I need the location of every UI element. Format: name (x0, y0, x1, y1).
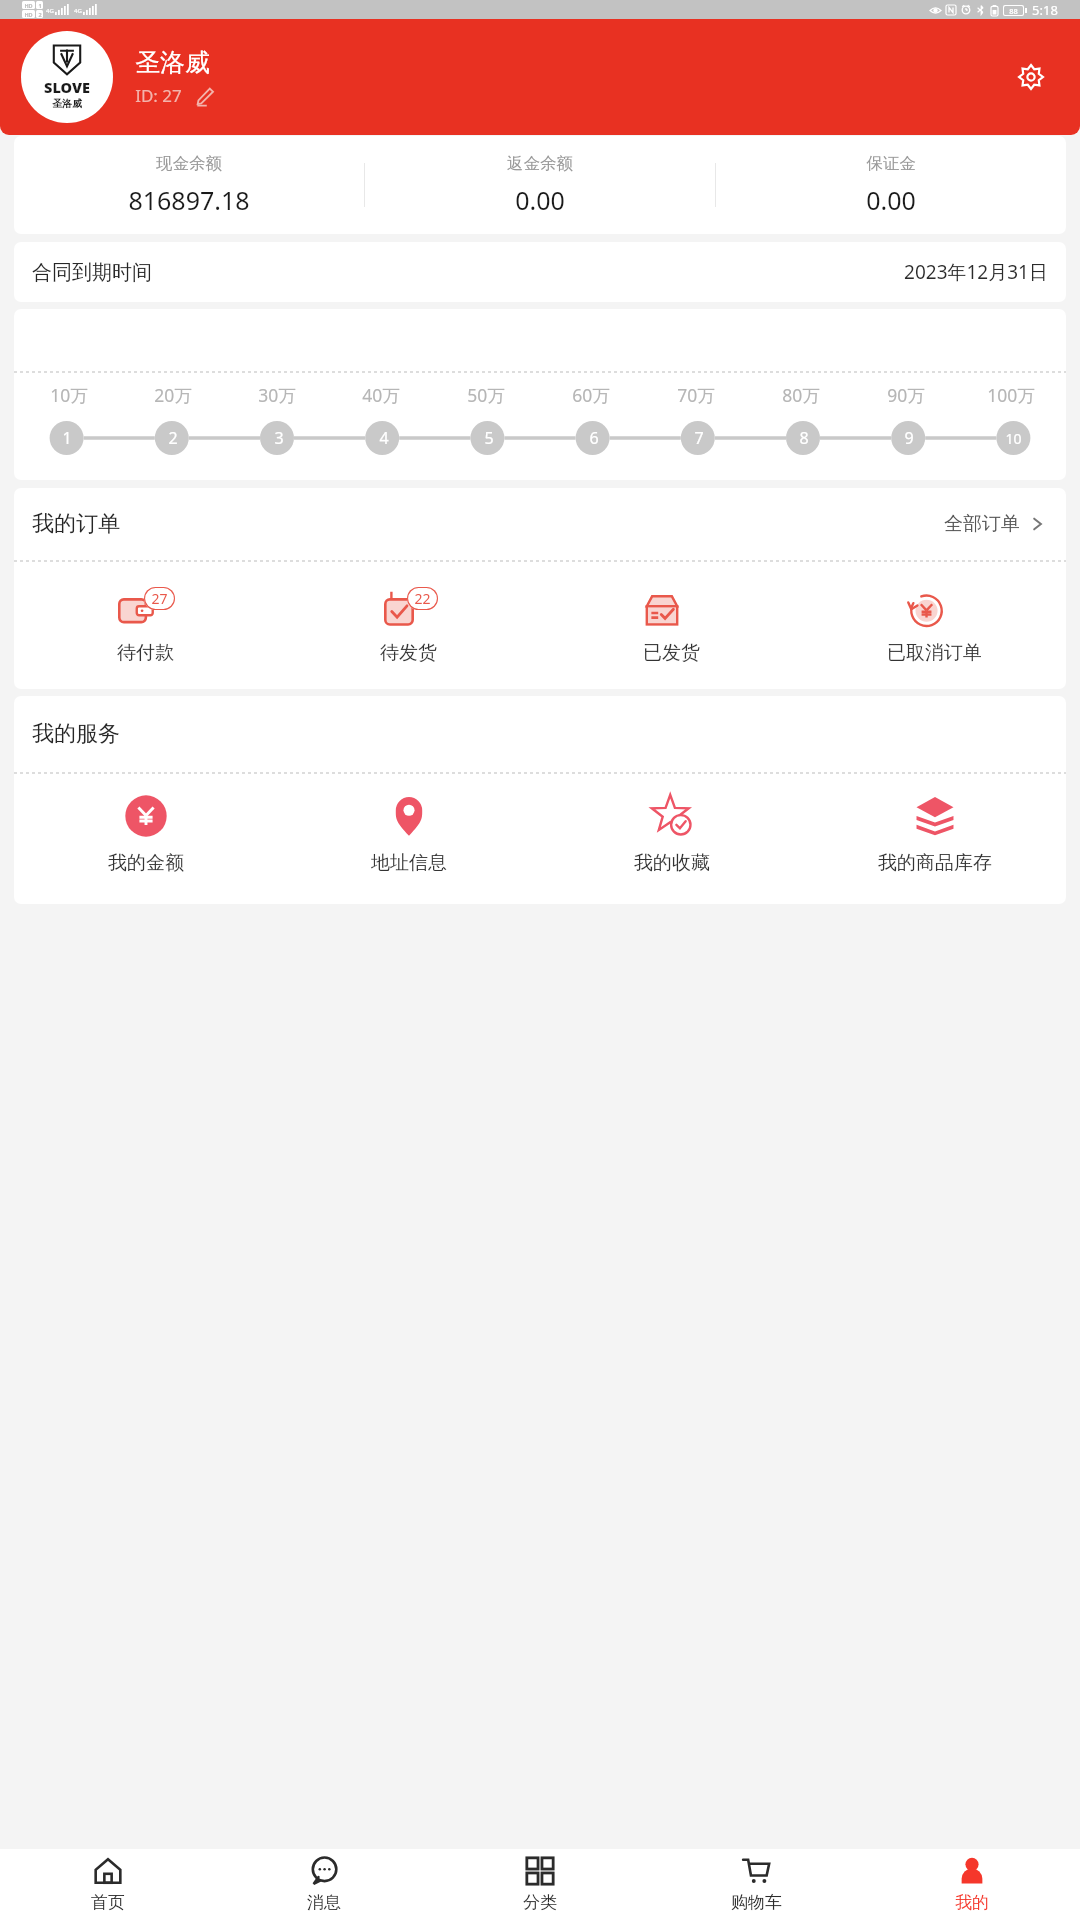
button[interactable]: 10 (961, 416, 1066, 460)
staticText: 分类 (523, 1892, 557, 1913)
staticText: 90万 (887, 383, 925, 407)
button[interactable]: 1 (14, 416, 120, 460)
staticText: 20万 (154, 383, 192, 407)
staticText: 消息 (307, 1892, 341, 1913)
staticText: 9 (904, 427, 914, 449)
button[interactable]: 现金余额 (14, 153, 364, 217)
button[interactable]: 购物车 (648, 1849, 864, 1920)
staticText: 返金余额 (507, 153, 573, 174)
staticText: 已取消订单 (887, 641, 982, 665)
button[interactable]: 编辑 (193, 85, 215, 107)
staticText: 88 (1009, 6, 1018, 15)
button[interactable]: 消息 (216, 1849, 432, 1920)
staticText: 我的商品库存 (878, 851, 992, 875)
staticText: 80万 (782, 383, 820, 407)
staticText: 40万 (362, 383, 400, 407)
staticText: 30万 (258, 383, 296, 407)
button[interactable]: 返金余额 (365, 153, 715, 217)
staticText: 22 (414, 589, 431, 608)
staticText: 4 (379, 427, 389, 449)
staticText: 我的服务 (32, 720, 120, 748)
staticText: HD (24, 11, 33, 18)
button[interactable]: 全部订单 (940, 508, 1048, 540)
staticText: 地址信息 (371, 851, 447, 875)
button[interactable]: 我的收藏 (540, 774, 803, 904)
button[interactable]: 7 (646, 416, 751, 460)
button[interactable]: 22 (277, 562, 540, 689)
staticText: 现金余额 (156, 153, 222, 174)
staticText: 我的收藏 (634, 851, 710, 875)
staticText: 10 (1005, 429, 1022, 448)
staticText: 我的订单 (32, 510, 120, 538)
button[interactable]: 地址信息 (277, 774, 540, 904)
staticText: 已发货 (643, 641, 700, 665)
staticText: 5:18 (1032, 1, 1058, 19)
staticText: 4G (74, 7, 82, 15)
button[interactable]: 已发货 (540, 562, 803, 689)
staticText: 4G (46, 7, 54, 15)
button[interactable]: 保证金 (716, 153, 1066, 217)
staticText: 50万 (467, 383, 505, 407)
staticText: 我的 (955, 1892, 989, 1913)
staticText: 2 (38, 11, 42, 18)
staticText: 100万 (987, 383, 1035, 407)
button[interactable]: 我的 (864, 1849, 1080, 1920)
staticText: 7 (694, 427, 704, 449)
staticText: 首页 (91, 1892, 125, 1913)
button[interactable]: 27 (14, 562, 277, 689)
staticText: ID: 27 (135, 84, 182, 107)
staticText: 70万 (677, 383, 715, 407)
staticText: 合同到期时间 (32, 260, 152, 285)
staticText: 圣洛威 (135, 47, 210, 78)
button[interactable]: 3 (226, 416, 331, 460)
staticText: 5 (484, 427, 494, 449)
staticText: 3 (274, 427, 284, 449)
staticText: 购物车 (731, 1892, 782, 1913)
button[interactable]: 首页 (0, 1849, 216, 1920)
button[interactable]: 已取消订单 (803, 562, 1066, 689)
staticText: 圣洛威 (52, 97, 82, 110)
button[interactable]: 6 (541, 416, 646, 460)
button[interactable]: 9 (856, 416, 961, 460)
staticText: 8 (799, 427, 809, 449)
button[interactable]: 4 (331, 416, 436, 460)
staticText: 0.00 (515, 183, 565, 217)
staticText: 0.00 (866, 183, 916, 217)
staticText: 2023年12月31日 (904, 259, 1048, 285)
staticText: 816897.18 (128, 183, 250, 217)
staticText: 我的金额 (108, 851, 184, 875)
button[interactable]: 我的商品库存 (803, 774, 1066, 904)
staticText: 27 (151, 589, 168, 608)
staticText: 全部订单 (944, 512, 1020, 536)
button[interactable]: 8 (751, 416, 856, 460)
staticText: 6 (589, 427, 599, 449)
staticText: 保证金 (866, 153, 916, 174)
staticText: 2 (168, 427, 178, 449)
button[interactable]: 分类 (432, 1849, 648, 1920)
staticText: 1 (62, 427, 72, 449)
button[interactable]: 设置 (1008, 54, 1054, 100)
button[interactable]: 合同到期时间 (14, 242, 1066, 302)
button[interactable]: 5 (436, 416, 541, 460)
staticText: 60万 (572, 383, 610, 407)
button[interactable]: 我的金额 (14, 774, 277, 904)
staticText: 1 (38, 2, 42, 9)
staticText: 待付款 (117, 641, 174, 665)
staticText: 待发货 (380, 641, 437, 665)
button[interactable]: 2 (120, 416, 226, 460)
staticText: 10万 (50, 383, 88, 407)
staticText: HD (24, 2, 33, 9)
staticText: SLOVE (44, 77, 90, 97)
